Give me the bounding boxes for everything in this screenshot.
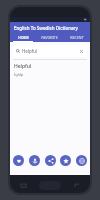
button[interactable]: Helpful	[13, 63, 87, 77]
button[interactable]: HOME	[10, 33, 36, 42]
staticText: Helpful	[22, 48, 38, 54]
button[interactable]: Home	[39, 181, 61, 190]
button[interactable]: Translate	[76, 155, 87, 166]
button[interactable]: FAVORITE	[36, 33, 63, 42]
staticText: English To Swedish Dictionary	[14, 25, 78, 31]
staticText: RECENT	[70, 35, 84, 40]
staticText: hjälp	[14, 72, 24, 77]
button[interactable]: Clear	[79, 49, 84, 54]
button[interactable]: Share	[45, 155, 56, 166]
staticText: FAVORITE	[41, 35, 58, 40]
staticText: HOME	[18, 35, 29, 40]
staticText: Helpful	[14, 63, 32, 70]
button[interactable]: Star	[60, 155, 71, 166]
button[interactable]: Helpful	[13, 45, 87, 57]
button[interactable]: Pronounce	[29, 155, 40, 166]
button[interactable]: RECENT	[63, 33, 90, 42]
button[interactable]: Favorite	[13, 155, 24, 166]
